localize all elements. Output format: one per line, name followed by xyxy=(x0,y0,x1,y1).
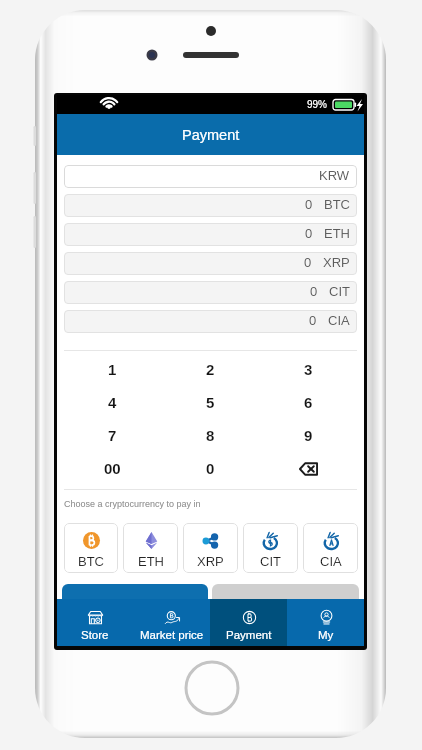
staticText: ETH xyxy=(138,554,164,569)
button[interactable]: KRW xyxy=(64,165,357,188)
staticText: 5 xyxy=(206,394,215,411)
button[interactable]: 0 xyxy=(64,310,357,333)
staticText: KRW xyxy=(319,168,350,183)
other: Backspace xyxy=(299,462,318,476)
staticText: CIA xyxy=(328,313,350,328)
button[interactable]: 2 xyxy=(161,353,259,386)
staticText: 99% xyxy=(307,99,328,110)
staticText: Choose a cryptocurrency to pay in xyxy=(64,499,201,509)
staticText: 9 xyxy=(304,427,313,444)
button[interactable]: Payment xyxy=(210,599,287,646)
staticText: My xyxy=(318,629,334,642)
button[interactable]: 9 xyxy=(259,419,357,452)
button[interactable]: 0 xyxy=(64,252,357,275)
button[interactable]: XRP xyxy=(183,523,238,573)
button[interactable]: 7 xyxy=(64,419,161,452)
staticText: Market price xyxy=(140,629,204,642)
staticText: 0 xyxy=(310,284,318,299)
button[interactable] xyxy=(212,584,359,624)
staticText: 2 xyxy=(206,361,215,378)
staticText: Payment xyxy=(226,629,272,642)
staticText: ETH xyxy=(324,226,350,241)
button[interactable]: 0 xyxy=(161,452,259,485)
staticText: BTC xyxy=(78,554,104,569)
staticText: 0 xyxy=(305,197,313,212)
staticText: 0 xyxy=(309,313,317,328)
staticText: CIT xyxy=(329,284,350,299)
button[interactable]: Store xyxy=(57,599,133,646)
staticText: XRP xyxy=(323,255,350,270)
staticText: BTC xyxy=(324,197,350,212)
button[interactable]: BTC xyxy=(64,523,118,573)
button[interactable]: ETH xyxy=(123,523,178,573)
button[interactable]: 4 xyxy=(64,386,161,419)
button[interactable]: 1 xyxy=(64,353,161,386)
staticText: XRP xyxy=(197,554,224,569)
button[interactable]: Market price xyxy=(133,599,210,646)
staticText: CIA xyxy=(320,554,342,569)
staticText: Payment xyxy=(182,127,240,143)
staticText: 4 xyxy=(108,394,117,411)
staticText: 0 xyxy=(305,226,313,241)
button[interactable]: Payment xyxy=(57,114,364,155)
button[interactable] xyxy=(62,584,208,624)
staticText: 0 xyxy=(206,460,215,477)
staticText: CIT xyxy=(260,554,281,569)
button[interactable]: CIT xyxy=(243,523,298,573)
button[interactable]: Backspace xyxy=(259,452,357,485)
button[interactable]: My xyxy=(287,599,364,646)
staticText: 1 xyxy=(108,361,117,378)
button[interactable]: 0 xyxy=(64,281,357,304)
staticText: 8 xyxy=(206,427,215,444)
button[interactable]: 8 xyxy=(161,419,259,452)
button[interactable]: 0 xyxy=(64,194,357,217)
button[interactable]: 0 xyxy=(64,223,357,246)
button[interactable]: 6 xyxy=(259,386,357,419)
button[interactable]: 5 xyxy=(161,386,259,419)
button[interactable]: 3 xyxy=(259,353,357,386)
staticText: 6 xyxy=(304,394,313,411)
staticText: 00 xyxy=(104,460,121,477)
staticText: 0 xyxy=(304,255,312,270)
staticText: 7 xyxy=(108,427,117,444)
staticText: 3 xyxy=(304,361,313,378)
button[interactable]: 00 xyxy=(64,452,161,485)
button[interactable]: CIA xyxy=(303,523,358,573)
staticText: Store xyxy=(81,629,109,642)
